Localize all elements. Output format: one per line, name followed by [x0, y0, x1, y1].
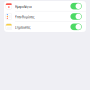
staticText: Ημερολόγιο [15, 5, 32, 9]
button[interactable]: Υπενθυμίσεις [4, 11, 86, 22]
staticText: Σημειώσεις [15, 25, 30, 29]
button[interactable]: On [70, 3, 82, 9]
button[interactable]: On [70, 13, 82, 20]
button[interactable]: On [70, 23, 82, 30]
button[interactable]: Σημειώσεις [4, 22, 86, 32]
staticText: Υπενθυμίσεις [15, 15, 34, 19]
button[interactable]: Ημερολόγιο [4, 1, 86, 11]
